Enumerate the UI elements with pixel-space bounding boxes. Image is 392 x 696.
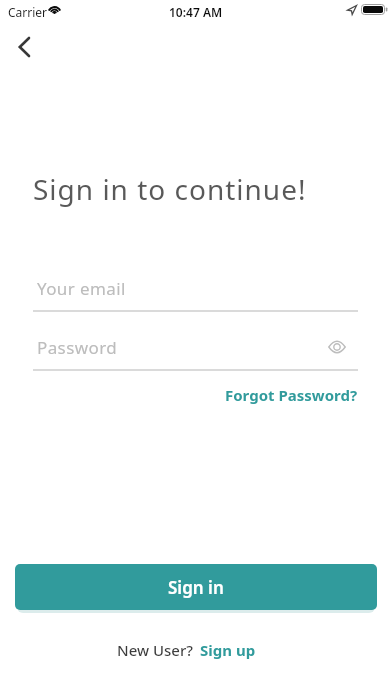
- staticText: New User?: [117, 640, 193, 660]
- staticText: Carrier: [8, 4, 48, 20]
- staticText: Password: [37, 336, 118, 359]
- button[interactable]: Password: [33, 331, 358, 371]
- staticText: Sign in to continue!: [33, 170, 307, 208]
- button[interactable]: Your email: [33, 272, 358, 312]
- button[interactable]: [3, 28, 44, 66]
- staticText: 10:47 AM: [169, 4, 223, 20]
- button[interactable]: Sign up: [200, 640, 256, 660]
- button[interactable]: [325, 338, 349, 356]
- button[interactable]: Sign in: [15, 564, 377, 610]
- staticText: Sign in: [168, 576, 224, 599]
- staticText: Your email: [37, 277, 126, 300]
- button[interactable]: Forgot Password?: [225, 385, 358, 405]
